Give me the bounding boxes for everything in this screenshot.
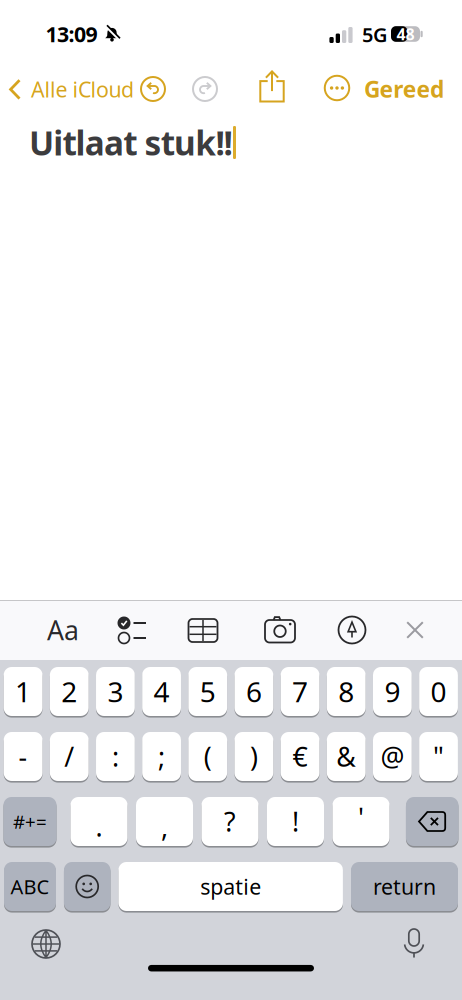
staticText: ? (224, 804, 236, 839)
staticText: 5G (362, 21, 388, 48)
staticText: & (336, 739, 356, 774)
button[interactable]: Share (259, 70, 285, 102)
staticText: / (64, 739, 74, 774)
button[interactable]: 8 (327, 667, 366, 716)
button[interactable]: 7 (281, 667, 319, 716)
button[interactable]: 6 (234, 667, 273, 716)
staticText: 8 (338, 673, 354, 710)
staticText: Uitlaat stuk!! (29, 120, 233, 165)
staticText: € (293, 739, 308, 774)
staticText: : (112, 739, 119, 774)
button[interactable]: Dismiss keyboard (406, 621, 424, 639)
button[interactable]: return (351, 862, 458, 911)
staticText: 5 (200, 673, 216, 710)
button[interactable]: ! (267, 797, 324, 846)
staticText: ; (158, 739, 165, 774)
staticText: 0 (430, 673, 446, 710)
button[interactable]: Delete (406, 797, 458, 846)
button[interactable]: 9 (373, 667, 412, 716)
button[interactable]: € (281, 732, 319, 781)
button[interactable]: ? (201, 797, 258, 846)
staticText: 3 (107, 673, 123, 710)
button[interactable]: : (96, 732, 135, 781)
button[interactable]: - (4, 732, 42, 781)
button[interactable]: Redo (193, 77, 217, 101)
staticText: ) (250, 739, 258, 774)
button[interactable]: " (419, 732, 458, 781)
button[interactable]: , (136, 797, 193, 846)
button[interactable]: Emoji (64, 862, 110, 911)
button[interactable]: 3 (96, 667, 135, 716)
button[interactable]: Markup (338, 616, 365, 643)
staticText: 48 (396, 23, 414, 45)
button[interactable]: ' (332, 797, 389, 846)
staticText: - (19, 739, 28, 774)
staticText: ABC (10, 873, 49, 900)
staticText: #+= (13, 809, 47, 834)
button[interactable]: 2 (50, 667, 89, 716)
button[interactable]: ; (142, 732, 181, 781)
staticText: ! (292, 804, 299, 839)
staticText: return (373, 872, 436, 901)
button[interactable]: & (327, 732, 366, 781)
staticText: 4 (154, 673, 170, 710)
button[interactable]: . (70, 797, 127, 846)
button[interactable]: Camera (265, 615, 295, 642)
staticText: 2 (61, 673, 77, 710)
staticText: 13:09 (45, 20, 97, 48)
button[interactable]: / (50, 732, 89, 781)
button[interactable]: spatie (118, 862, 343, 911)
button[interactable]: More (325, 76, 349, 100)
staticText: , (161, 809, 168, 844)
staticText: Alle iCloud (31, 75, 134, 103)
button[interactable]: ABC (4, 862, 56, 911)
staticText: @ (380, 739, 404, 774)
button[interactable]: Checklist (117, 616, 146, 643)
staticText: " (433, 739, 444, 774)
staticText: 1 (15, 673, 31, 710)
button[interactable]: 1 (4, 667, 42, 716)
staticText: spatie (200, 872, 261, 901)
button[interactable]: 4 (142, 667, 181, 716)
staticText: ( (204, 739, 212, 774)
button[interactable]: ) (234, 732, 273, 781)
staticText: 7 (292, 673, 308, 710)
button[interactable]: 0 (419, 667, 458, 716)
button[interactable]: Undo (141, 77, 165, 101)
button[interactable]: Gereed (364, 74, 444, 104)
staticText: 6 (246, 673, 262, 710)
button[interactable]: Format (47, 612, 79, 648)
button[interactable]: 5 (188, 667, 227, 716)
button[interactable]: Next keyboard (32, 930, 60, 958)
button[interactable]: #+= (3, 797, 56, 846)
staticText: ' (358, 800, 364, 835)
staticText: Gereed (364, 74, 444, 104)
staticText: . (95, 809, 102, 844)
button[interactable]: Dictation (403, 928, 424, 958)
button[interactable]: @ (373, 732, 412, 781)
button[interactable]: ( (188, 732, 227, 781)
staticText: Aa (47, 612, 79, 648)
button[interactable]: Table (188, 619, 217, 642)
button[interactable]: Back to Alle iCloud (9, 72, 179, 106)
staticText: 9 (384, 673, 400, 710)
